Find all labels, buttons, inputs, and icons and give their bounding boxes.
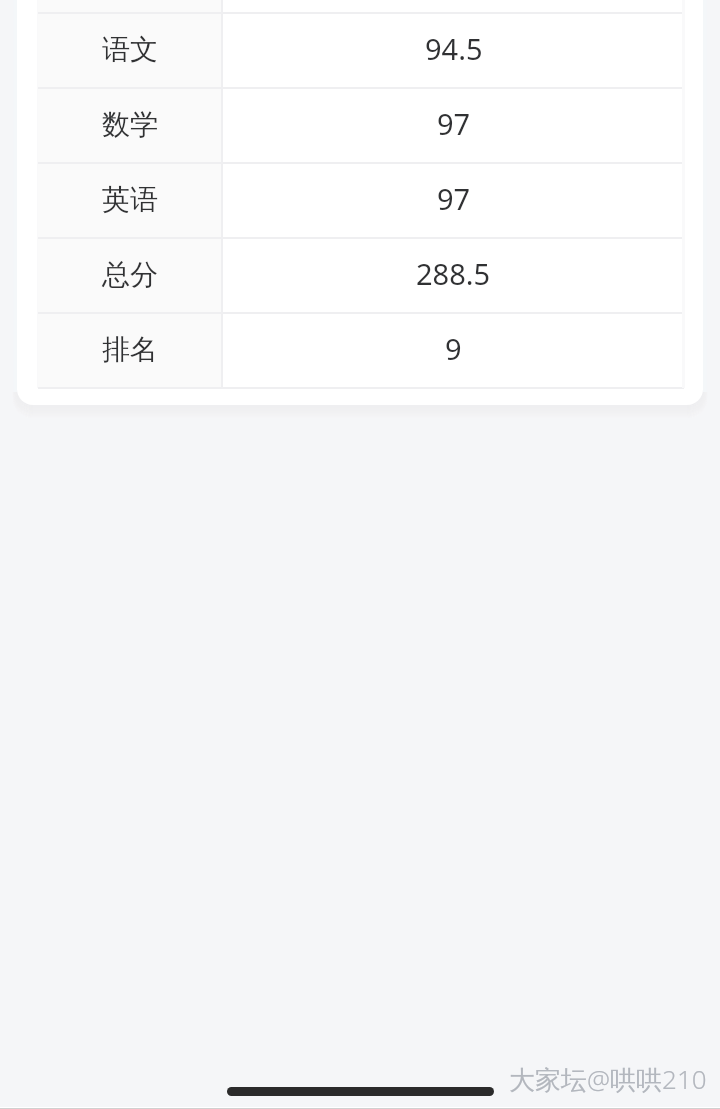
staticText: 9 [445,329,462,368]
button[interactable]: 数学 [38,89,684,162]
staticText: 288.5 [416,254,491,293]
staticText: 英语 [102,182,158,217]
staticText: 排名 [102,332,158,367]
staticText: 大家坛@哄哄210 [509,1061,707,1097]
staticText: 语文 [102,32,158,67]
button[interactable]: 语文 [38,14,684,87]
staticText: 总分 [102,257,158,292]
staticText: 97 [437,104,471,143]
button[interactable]: 总分 [38,239,684,312]
staticText: 94.5 [425,29,483,68]
button[interactable]: 英语 [38,164,684,237]
staticText: 97 [437,179,471,218]
staticText: 数学 [102,107,158,142]
button[interactable]: 排名 [38,314,684,387]
